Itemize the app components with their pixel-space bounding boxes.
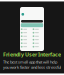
staticText: The best small app that will help you wo…	[3, 59, 61, 70]
staticText: Friendly User Interface	[3, 51, 61, 58]
